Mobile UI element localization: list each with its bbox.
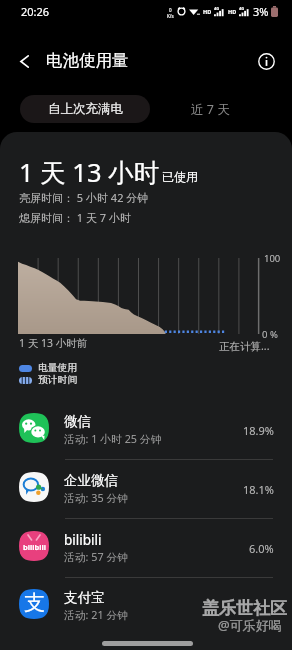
staticText: bilibili — [64, 531, 102, 549]
staticText: 0 — [169, 7, 172, 13]
staticText: HD — [203, 8, 212, 15]
staticText: 已使用 — [162, 169, 198, 184]
staticText: 18.9% — [243, 423, 274, 438]
staticText: HD — [228, 8, 237, 15]
button[interactable]: 微信 — [0, 400, 292, 458]
staticText: 支付宝 — [64, 589, 105, 606]
staticText: 熄屏时间： 1 天 7 小时 — [19, 210, 132, 225]
staticText: bilibili — [23, 542, 46, 552]
button[interactable]: 自上次充满电 — [20, 95, 150, 123]
staticText: 活动: 35 分钟 — [64, 490, 129, 505]
staticText: 1 天 13 小时 — [19, 155, 160, 190]
button[interactable]: 近 7 天 — [160, 95, 260, 123]
staticText: 电池使用量 — [46, 50, 129, 71]
button[interactable]: bilibili — [0, 518, 292, 576]
staticText: 4G — [214, 6, 220, 11]
button[interactable]: 支 — [0, 576, 292, 634]
staticText: K/s — [167, 13, 174, 19]
staticText: 1 天 13 小时前 — [19, 336, 88, 350]
staticText: 3% — [253, 4, 269, 19]
button[interactable]: 企业微信 — [0, 459, 292, 517]
staticText: 自上次充满电 — [48, 101, 123, 117]
staticText: 近 7 天 — [191, 101, 230, 118]
staticText: 支 — [24, 590, 45, 616]
staticText: 亮屏时间： 5 小时 42 分钟 — [19, 190, 149, 205]
staticText: 企业微信 — [64, 472, 118, 489]
staticText: 100 — [264, 252, 281, 265]
staticText: @可乐好喝 — [218, 616, 282, 634]
staticText: 正在计算... — [219, 339, 270, 353]
staticText: 活动: 57 分钟 — [64, 549, 129, 564]
button[interactable]: Information — [250, 45, 282, 77]
staticText: 0 % — [262, 328, 278, 341]
staticText: 活动: 21 分钟 — [64, 607, 129, 622]
staticText: 预计时间 — [38, 374, 78, 386]
staticText: 活动: 1 小时 25 分钟 — [64, 431, 162, 446]
staticText: 18.1% — [243, 482, 274, 497]
button[interactable]: Back — [7, 44, 41, 78]
staticText: 盖乐世社区 — [202, 598, 287, 619]
staticText: 6.0% — [249, 541, 274, 556]
staticText: 微信 — [64, 413, 91, 430]
staticText: 4G — [239, 6, 245, 11]
staticText: 电量使用 — [38, 362, 78, 374]
staticText: 20:26 — [21, 4, 50, 19]
